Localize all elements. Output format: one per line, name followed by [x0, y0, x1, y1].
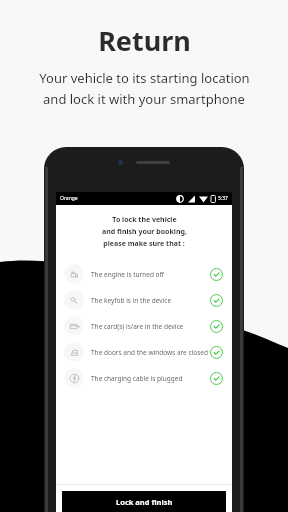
button[interactable]: The charging cable is plugged: [56, 365, 232, 391]
staticText: Lock and finish: [116, 497, 173, 507]
staticText: The engine is turned off: [91, 270, 165, 279]
staticText: and lock it with your smartphone: [43, 90, 245, 108]
staticText: To lock the vehicle: [112, 215, 177, 225]
staticText: Orange: [60, 195, 78, 202]
staticText: The keyfob is in the device: [91, 296, 172, 305]
staticText: The charging cable is plugged: [91, 374, 183, 383]
button[interactable]: Lock and finish: [62, 491, 226, 512]
button[interactable]: The engine is turned off: [56, 261, 232, 287]
staticText: Return: [98, 22, 191, 59]
staticText: The doors and the windows are closed: [91, 348, 208, 357]
button[interactable]: The keyfob is in the device: [56, 287, 232, 313]
staticText: 5:37: [218, 195, 228, 202]
button[interactable]: The doors and the windows are closed: [56, 339, 232, 365]
staticText: please make sure that :: [103, 239, 185, 249]
staticText: The card(s) is/are in the device: [91, 322, 184, 331]
button[interactable]: The card(s) is/are in the device: [56, 313, 232, 339]
staticText: Your vehicle to its starting location: [39, 69, 250, 87]
staticText: and finish your booking,: [102, 227, 187, 237]
